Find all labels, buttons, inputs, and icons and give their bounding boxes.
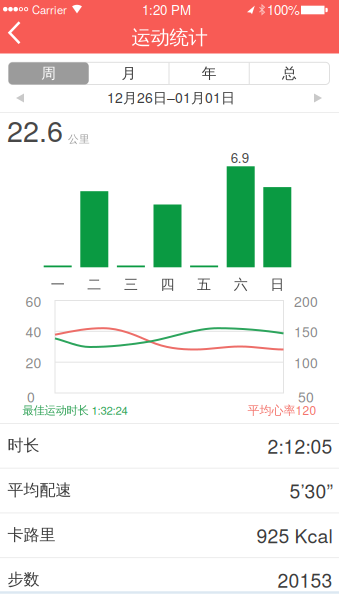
staticText: Carrier [32, 1, 67, 17]
staticText: 50 [298, 386, 314, 406]
staticText: 二 [87, 276, 101, 293]
staticText: 100% [267, 0, 300, 19]
staticText: 1:20 PM [142, 0, 191, 19]
staticText: 时长 [7, 435, 39, 455]
staticText: 公里 [68, 133, 90, 146]
staticText: 三 [124, 276, 138, 293]
staticText: 2:12:05 [267, 432, 332, 459]
button[interactable]: Back [0, 18, 44, 48]
staticText: 步数 [7, 569, 39, 590]
staticText: 0 [27, 386, 35, 406]
staticText: 925 Kcal [256, 521, 332, 549]
staticText: 一 [51, 276, 65, 293]
staticText: 150 [294, 321, 318, 341]
staticText: 月 [121, 64, 136, 83]
staticText: 平均配速 [7, 480, 71, 500]
staticText: 5’30” [289, 476, 332, 504]
button[interactable]: 月 [89, 62, 169, 84]
staticText: 六 [234, 276, 248, 293]
staticText: 年 [202, 64, 217, 83]
staticText: 五 [197, 276, 211, 293]
staticText: 60 [25, 291, 41, 311]
staticText: 周 [41, 64, 56, 83]
button[interactable]: Previous week [9, 91, 35, 105]
button[interactable]: 周 [8, 62, 89, 84]
button[interactable]: Next week [303, 91, 329, 105]
staticText: 平均心率120 [247, 401, 316, 418]
staticText: 40 [25, 321, 41, 341]
staticText: 卡路里 [7, 525, 55, 545]
staticText: 12月26日–01月01日 [107, 87, 235, 107]
button[interactable]: 总 [249, 62, 329, 84]
staticText: 四 [160, 276, 174, 293]
staticText: 20 [25, 352, 41, 372]
staticText: 22.6 [7, 109, 63, 150]
staticText: 总 [282, 64, 297, 83]
staticText: 运动统计 [131, 25, 207, 50]
staticText: 100 [294, 352, 318, 372]
staticText: 200 [294, 291, 318, 311]
staticText: 最佳运动时长 1:32:24 [22, 402, 127, 418]
staticText: 20153 [277, 566, 332, 593]
staticText: 日 [270, 276, 284, 293]
button[interactable]: 年 [169, 62, 249, 84]
staticText: 6.9 [231, 148, 249, 167]
